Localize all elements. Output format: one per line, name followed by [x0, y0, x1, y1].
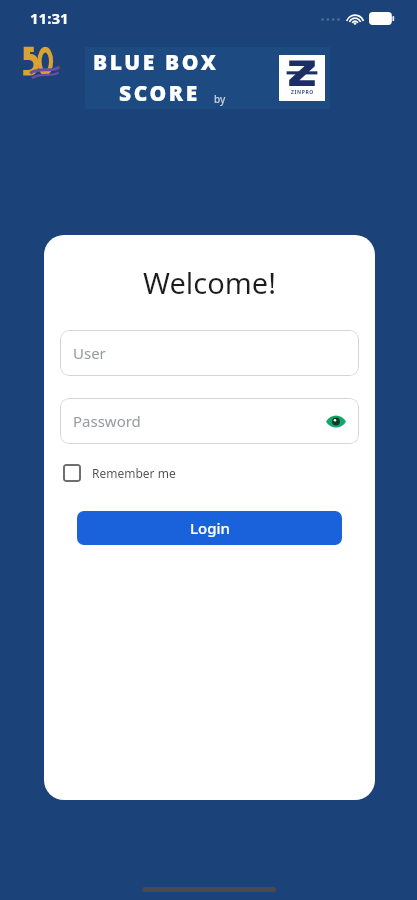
staticText: ZINPRO — [291, 89, 314, 96]
staticText: User — [73, 343, 106, 363]
staticText: SCORE — [119, 79, 200, 108]
button[interactable]: Password — [60, 398, 359, 444]
staticText: by — [214, 92, 226, 106]
button[interactable]: Login — [77, 511, 342, 545]
button[interactable]: Remember me — [63, 464, 176, 482]
staticText: Password — [73, 411, 141, 431]
staticText: Login — [190, 518, 230, 538]
button[interactable]: Show password — [321, 406, 351, 436]
staticText: Remember me — [92, 465, 176, 481]
staticText: 11:31 — [30, 8, 69, 28]
staticText: BLUE BOX — [93, 48, 219, 77]
staticText: Welcome! — [143, 263, 276, 302]
button[interactable]: User — [60, 330, 359, 376]
